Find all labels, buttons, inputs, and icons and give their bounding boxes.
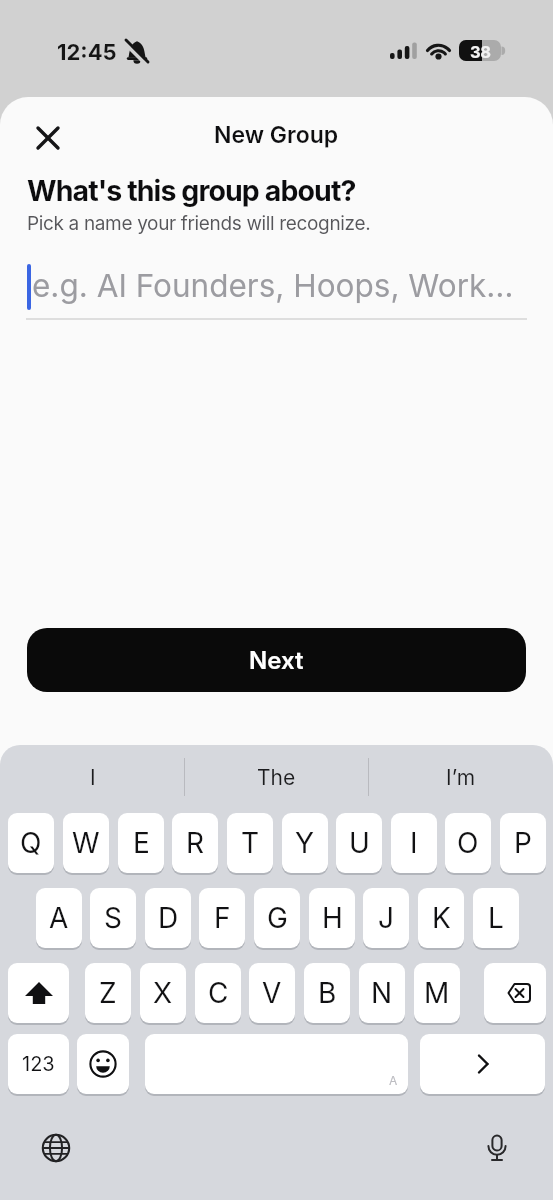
button[interactable]: S xyxy=(90,888,136,948)
staticText: U xyxy=(349,826,370,860)
staticText: D xyxy=(158,901,179,935)
button[interactable] xyxy=(420,1034,545,1094)
button[interactable]: E xyxy=(118,813,164,873)
staticText: O xyxy=(457,826,479,860)
button[interactable]: Y xyxy=(282,813,328,873)
button[interactable]: R xyxy=(172,813,218,873)
button[interactable]: Z xyxy=(85,963,131,1023)
staticText: New Group xyxy=(214,121,339,149)
button[interactable]: I’m xyxy=(376,755,545,799)
staticText: 12:45 xyxy=(57,39,117,66)
button[interactable]: G xyxy=(254,888,300,948)
staticText: Q xyxy=(20,826,42,860)
staticText: I xyxy=(90,765,96,790)
staticText: What's this group about? xyxy=(27,173,356,207)
staticText: J xyxy=(378,901,394,935)
button[interactable] xyxy=(8,963,69,1023)
button[interactable]: N xyxy=(359,963,405,1023)
button[interactable]: I xyxy=(8,755,177,799)
button[interactable]: F xyxy=(199,888,245,948)
staticText: S xyxy=(104,901,122,935)
staticText: I xyxy=(410,826,418,860)
button[interactable] xyxy=(29,119,67,157)
button[interactable]: T xyxy=(227,813,273,873)
staticText: Z xyxy=(99,976,117,1010)
staticText: Next xyxy=(249,646,304,675)
staticText: A xyxy=(49,901,69,935)
staticText: H xyxy=(322,901,343,935)
button[interactable] xyxy=(36,1128,76,1168)
staticText: The xyxy=(257,765,296,790)
staticText: B xyxy=(318,976,337,1010)
button[interactable]: U xyxy=(336,813,382,873)
button[interactable]: O xyxy=(445,813,491,873)
button[interactable]: A xyxy=(145,1034,408,1094)
button[interactable]: K xyxy=(418,888,464,948)
staticText: Y xyxy=(295,826,315,860)
staticText: I’m xyxy=(446,765,476,790)
staticText: R xyxy=(186,826,205,860)
button[interactable]: The xyxy=(192,755,361,799)
staticText: G xyxy=(267,901,288,935)
button[interactable] xyxy=(477,1128,517,1168)
staticText: X xyxy=(153,976,173,1010)
button[interactable]: V xyxy=(249,963,295,1023)
staticText: L xyxy=(488,901,504,935)
staticText: W xyxy=(72,826,100,860)
button[interactable]: D xyxy=(145,888,191,948)
staticText: C xyxy=(208,976,229,1010)
staticText: E xyxy=(133,826,150,860)
staticText: P xyxy=(514,826,532,860)
staticText: K xyxy=(432,901,451,935)
button[interactable]: J xyxy=(363,888,409,948)
button[interactable]: A xyxy=(36,888,82,948)
button[interactable] xyxy=(77,1034,129,1094)
button[interactable]: B xyxy=(304,963,350,1023)
staticText: 38 xyxy=(470,42,491,62)
staticText: T xyxy=(241,826,260,860)
button[interactable]: C xyxy=(195,963,241,1023)
button[interactable]: W xyxy=(63,813,109,873)
button[interactable]: M xyxy=(414,963,460,1023)
staticText: e.g. AI Founders, Hoops, Work… xyxy=(32,266,514,304)
staticText: N xyxy=(371,976,393,1010)
staticText: M xyxy=(424,976,450,1010)
staticText: V xyxy=(262,976,282,1010)
button[interactable]: Next xyxy=(27,628,526,692)
button[interactable]: Q xyxy=(8,813,54,873)
button[interactable]: H xyxy=(309,888,355,948)
staticText: Pick a name your friends will recognize. xyxy=(27,212,371,235)
button[interactable]: 123 xyxy=(8,1034,69,1094)
staticText: A xyxy=(389,1073,398,1088)
staticText: 123 xyxy=(22,1052,55,1076)
button[interactable]: P xyxy=(500,813,546,873)
staticText: F xyxy=(214,901,231,935)
button[interactable] xyxy=(484,963,546,1023)
button[interactable]: I xyxy=(391,813,437,873)
button[interactable]: X xyxy=(140,963,186,1023)
button[interactable]: L xyxy=(473,888,519,948)
